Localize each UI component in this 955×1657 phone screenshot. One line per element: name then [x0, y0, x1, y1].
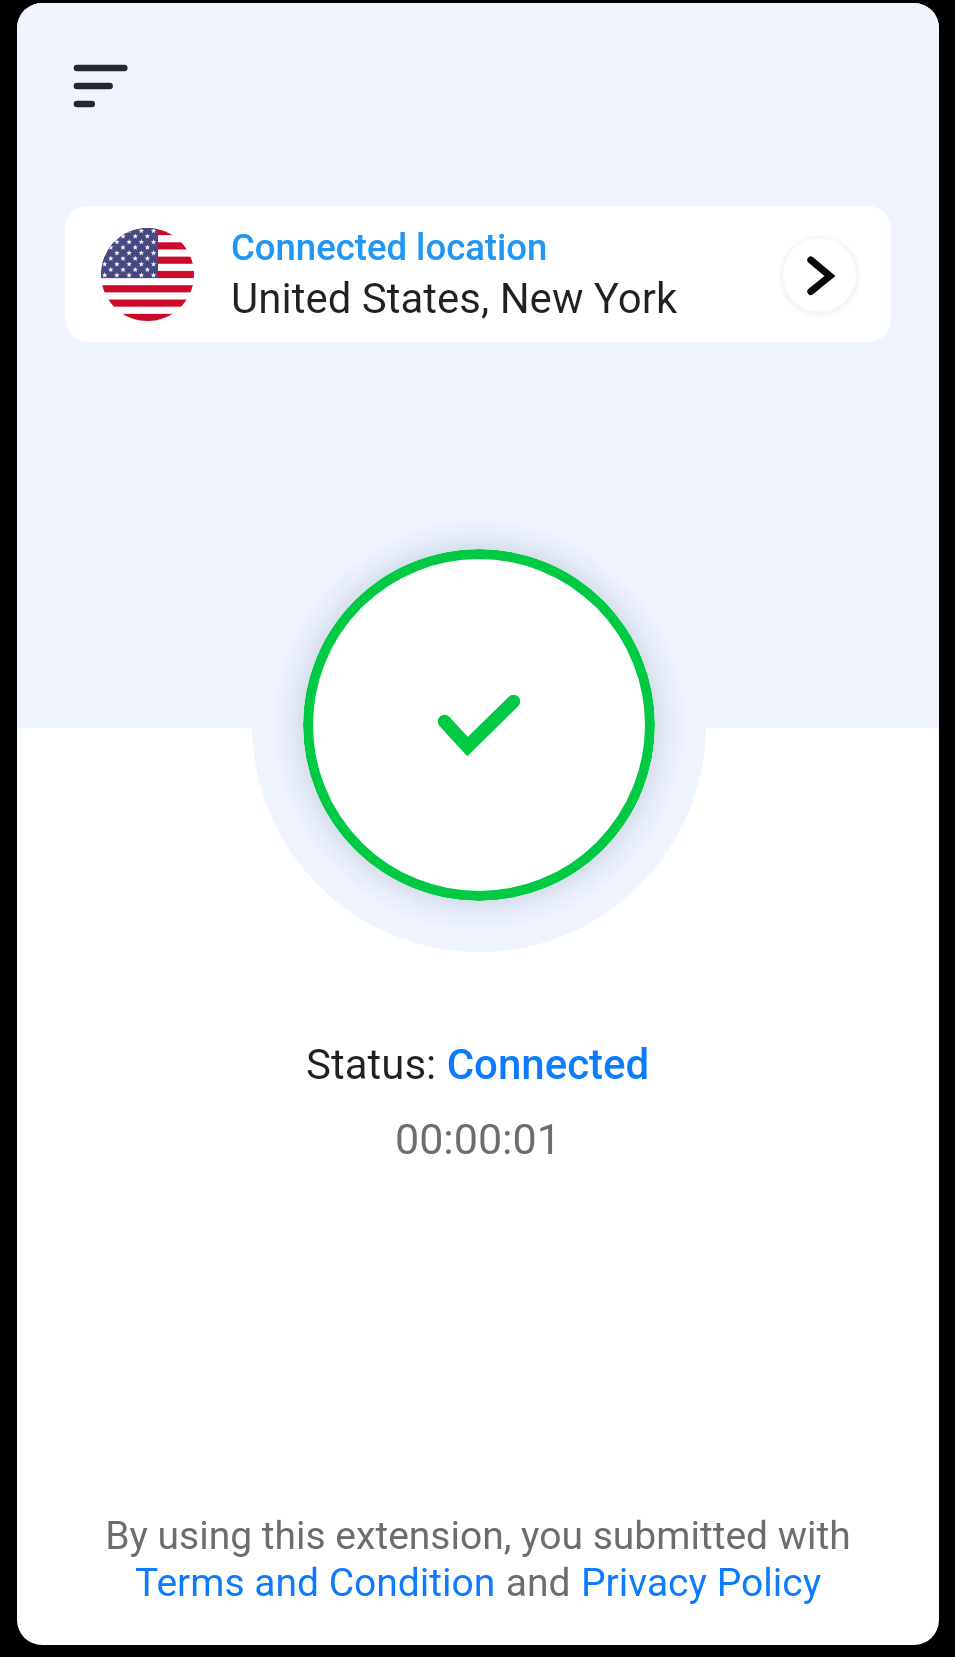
- button[interactable]: Privacy Policy: [581, 1560, 822, 1606]
- staticText: and: [496, 1560, 581, 1606]
- button[interactable]: Change location: [783, 238, 856, 311]
- button[interactable]: Connected location: [65, 206, 891, 342]
- staticText: By using this extension, you submitted w…: [105, 1513, 851, 1559]
- staticText: Connected location: [231, 226, 548, 269]
- staticText: United States, New York: [231, 274, 678, 323]
- staticText: Status: Connected: [306, 1040, 650, 1089]
- button[interactable]: Open menu: [64, 58, 126, 120]
- staticText: 00:00:01: [395, 1114, 561, 1164]
- button[interactable]: Disconnect VPN: [303, 549, 655, 901]
- button[interactable]: Terms and Condition: [135, 1560, 496, 1606]
